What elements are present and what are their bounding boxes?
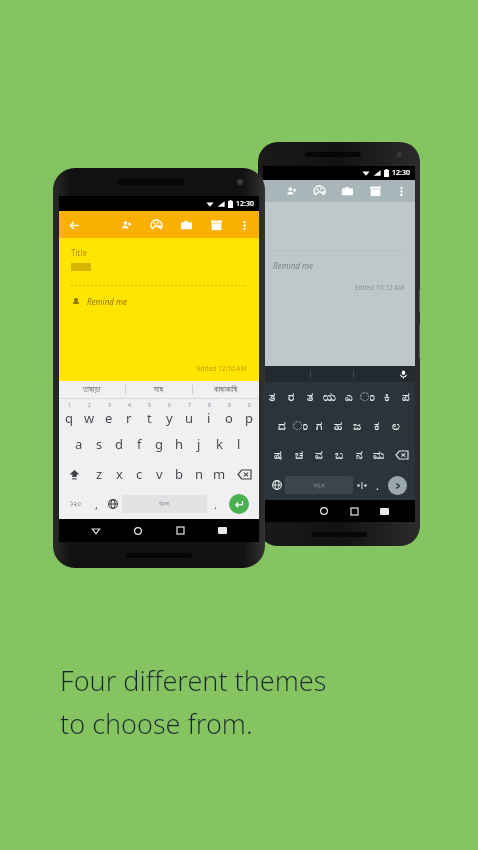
button[interactable]: ಂ bbox=[358, 382, 377, 411]
button[interactable]: Enter bbox=[384, 473, 410, 497]
button[interactable]: , bbox=[88, 489, 104, 519]
button[interactable]: Hide keyboard bbox=[369, 500, 399, 522]
button[interactable]: Shift bbox=[59, 459, 89, 489]
button[interactable]: Space bbox=[122, 495, 207, 513]
staticText: j bbox=[197, 435, 201, 453]
staticText: t bbox=[147, 409, 152, 427]
staticText: u bbox=[185, 409, 194, 427]
button[interactable]: More options bbox=[236, 217, 252, 233]
staticText: x bbox=[116, 465, 123, 483]
button[interactable]: More options bbox=[393, 183, 409, 199]
button[interactable]: ಚ bbox=[289, 440, 309, 470]
button[interactable]: ಬ bbox=[329, 440, 349, 470]
button[interactable]: 5 bbox=[139, 399, 159, 429]
button[interactable]: b bbox=[169, 459, 189, 489]
button[interactable]: ಕಿ bbox=[377, 382, 396, 411]
button[interactable]: Archive bbox=[208, 217, 224, 233]
staticText: 8 bbox=[208, 402, 211, 409]
button[interactable]: h bbox=[169, 429, 189, 459]
staticText: ಪ bbox=[402, 391, 410, 403]
button[interactable]: ಹ bbox=[329, 411, 348, 440]
button[interactable]: l bbox=[229, 429, 249, 459]
button[interactable]: Recents bbox=[159, 519, 201, 542]
button[interactable]: ಗ bbox=[310, 411, 329, 440]
button[interactable]: Archive bbox=[367, 183, 383, 199]
button[interactable]: Recents bbox=[339, 500, 369, 522]
button[interactable]: Change color bbox=[148, 217, 164, 233]
button[interactable]: 7 bbox=[179, 399, 199, 429]
button[interactable]: m bbox=[209, 459, 229, 489]
button[interactable]: Add image bbox=[339, 183, 355, 199]
button[interactable] bbox=[353, 470, 370, 500]
staticText: y bbox=[166, 409, 173, 427]
button[interactable]: 3 bbox=[99, 399, 119, 429]
button[interactable]: ನ bbox=[349, 440, 369, 470]
button[interactable]: Hide keyboard bbox=[201, 519, 243, 542]
button[interactable]: ತ bbox=[263, 382, 282, 411]
button[interactable]: Home bbox=[309, 500, 339, 522]
staticText: w bbox=[84, 409, 95, 427]
button[interactable]: ಜ bbox=[348, 411, 367, 440]
button[interactable]: c bbox=[129, 459, 149, 489]
button[interactable]: Switch language bbox=[268, 470, 285, 500]
staticText: ಂ bbox=[360, 391, 375, 403]
button[interactable]: Back bbox=[66, 217, 82, 233]
button[interactable]: g bbox=[149, 429, 169, 459]
button[interactable]: ಲ bbox=[386, 411, 405, 440]
button[interactable]: 0 bbox=[239, 399, 259, 429]
button[interactable]: d bbox=[109, 429, 129, 459]
button[interactable]: ರ bbox=[282, 382, 301, 411]
button[interactable]: n bbox=[189, 459, 209, 489]
button[interactable]: 2 bbox=[79, 399, 99, 429]
button[interactable]: s bbox=[89, 429, 109, 459]
button[interactable]: ಎ bbox=[339, 382, 358, 411]
button[interactable]: ১২০ bbox=[63, 489, 88, 519]
button[interactable]: 8 bbox=[199, 399, 219, 429]
button[interactable]: 4 bbox=[119, 399, 139, 429]
button[interactable]: ಯ bbox=[320, 382, 339, 411]
button[interactable]: মাছ bbox=[126, 381, 192, 398]
staticText: ಲ bbox=[392, 420, 400, 432]
button[interactable]: Backspace bbox=[389, 440, 415, 470]
button[interactable]: a bbox=[69, 429, 89, 459]
button[interactable]: Space bbox=[285, 476, 353, 494]
button[interactable]: ಮ bbox=[369, 440, 389, 470]
button[interactable]: z bbox=[89, 459, 109, 489]
button[interactable]: 9 bbox=[219, 399, 239, 429]
button[interactable]: . bbox=[207, 489, 223, 519]
button[interactable]: v bbox=[149, 459, 169, 489]
staticText: 1 bbox=[68, 402, 71, 409]
button[interactable]: ಂ bbox=[291, 411, 310, 440]
button[interactable]: x bbox=[109, 459, 129, 489]
button[interactable]: ಷ bbox=[268, 440, 289, 470]
button[interactable]: Add collaborator bbox=[283, 183, 299, 199]
button[interactable]: Switch language bbox=[104, 489, 122, 519]
button[interactable]: Voice input bbox=[396, 367, 410, 381]
button[interactable]: Home bbox=[117, 519, 159, 542]
button[interactable]: 1 bbox=[59, 399, 79, 429]
button[interactable]: Add collaborator bbox=[118, 217, 134, 233]
button[interactable]: Enter bbox=[223, 492, 255, 516]
button[interactable]: Add image bbox=[178, 217, 194, 233]
staticText: ಗ bbox=[316, 420, 323, 432]
button[interactable]: 6 bbox=[159, 399, 179, 429]
button[interactable]: Backspace bbox=[229, 459, 259, 489]
button[interactable]: Back bbox=[75, 519, 117, 542]
button[interactable]: ಕ bbox=[367, 411, 386, 440]
button[interactable]: ಪ bbox=[396, 382, 415, 411]
button[interactable]: তাছাড়া bbox=[59, 381, 125, 398]
button[interactable]: ತ bbox=[301, 382, 320, 411]
button[interactable]: ದ bbox=[272, 411, 291, 440]
button[interactable]: Change color bbox=[311, 183, 327, 199]
button[interactable]: j bbox=[189, 429, 209, 459]
button[interactable]: ವ bbox=[309, 440, 329, 470]
staticText: q bbox=[65, 409, 73, 427]
button[interactable]: কাছাকাছি bbox=[193, 381, 259, 398]
button[interactable]: f bbox=[129, 429, 149, 459]
button[interactable]: k bbox=[209, 429, 229, 459]
button[interactable]: . bbox=[370, 470, 384, 500]
